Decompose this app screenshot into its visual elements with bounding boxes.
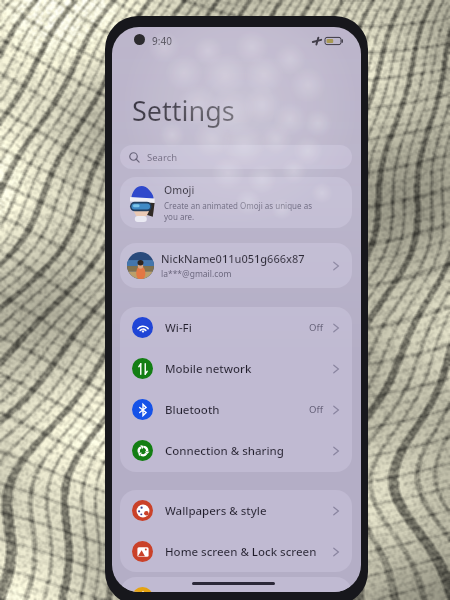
staticText: Omoji [164, 183, 195, 197]
staticText: 9:40 [152, 34, 172, 48]
button[interactable]: Connection & sharing [120, 430, 352, 471]
button[interactable]: NickName011u051g666x87 [120, 243, 352, 288]
staticText: Off [309, 403, 323, 416]
button[interactable]: Omoji [120, 177, 352, 228]
staticText: Create an animated Omoji as unique as yo… [164, 200, 312, 222]
staticText: Wallpapers & style [165, 503, 331, 519]
staticText: la***@gmail.com [161, 268, 232, 280]
staticText: Wi-Fi [165, 320, 309, 336]
staticText: Settings [132, 92, 235, 129]
staticText: Search [147, 151, 178, 164]
staticText: NickName011u051g666x87 [161, 251, 305, 266]
button[interactable]: Mobile network [120, 348, 352, 389]
staticText: Connection & sharing [165, 443, 331, 459]
button[interactable]: Search [120, 145, 352, 169]
staticText: Bluetooth [165, 402, 309, 418]
button[interactable]: Wallpapers & style [120, 490, 352, 531]
button[interactable]: Display & brightness [120, 577, 352, 592]
staticText: Off [309, 321, 323, 334]
button[interactable]: Wi-Fi [120, 307, 352, 348]
button[interactable]: Bluetooth [120, 389, 352, 430]
button[interactable]: Home screen & Lock screen [120, 531, 352, 572]
staticText: Home screen & Lock screen [165, 544, 331, 560]
staticText: Mobile network [165, 361, 331, 377]
